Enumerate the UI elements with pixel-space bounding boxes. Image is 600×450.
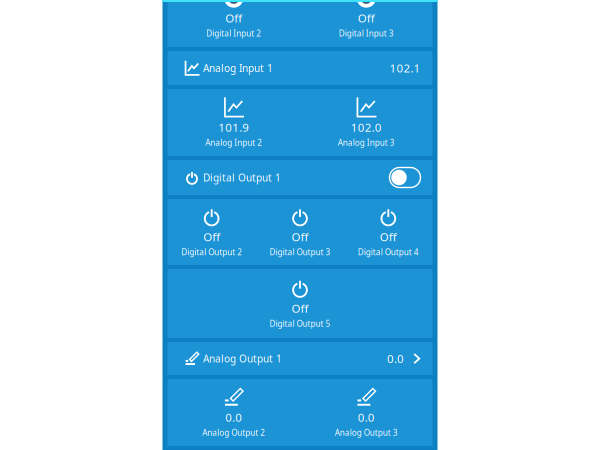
staticText: Analog Input 3	[338, 137, 395, 148]
staticText: Off	[358, 10, 375, 26]
button[interactable]: Off	[256, 206, 344, 258]
staticText: Off	[380, 229, 397, 244]
button[interactable]: Off	[167, 278, 432, 329]
button[interactable]: 102.0	[300, 97, 432, 148]
button[interactable]: 0.0	[300, 387, 432, 438]
button[interactable]: Off	[167, 206, 256, 258]
staticText: Digital Output 2	[181, 246, 242, 258]
button[interactable]: Off	[344, 206, 432, 258]
staticText: Off	[225, 10, 242, 26]
staticText: 102.0	[351, 119, 382, 135]
staticText: 0.0	[358, 409, 375, 425]
staticText: Digital Output 3	[269, 246, 330, 258]
staticText: Digital Input 2	[206, 28, 261, 39]
staticText: 0.0	[387, 351, 404, 366]
staticText: Analog Input 1	[203, 61, 273, 75]
staticText: Digital Input 3	[339, 28, 394, 39]
staticText: Analog Output 1	[203, 352, 282, 365]
staticText: Digital Output 5	[269, 318, 330, 329]
staticText: Digital Output 4	[358, 246, 419, 258]
staticText: Off	[291, 300, 308, 316]
staticText: 101.9	[218, 119, 249, 135]
button[interactable]: Analog Input 1	[167, 51, 432, 85]
button[interactable]: 0.0	[167, 387, 300, 438]
button[interactable]: 101.9	[167, 97, 300, 148]
staticText: Analog Output 3	[335, 427, 398, 438]
staticText: Digital Output 1	[203, 171, 281, 184]
staticText: Off	[291, 229, 308, 244]
staticText: 102.1	[389, 60, 420, 76]
staticText: 0.0	[225, 409, 242, 425]
staticText: Analog Input 2	[205, 137, 262, 148]
button[interactable]: Digital Output 1	[167, 160, 432, 195]
staticText: Off	[203, 229, 220, 244]
staticText: Analog Output 2	[202, 427, 265, 438]
button[interactable]: Analog Output 1	[167, 342, 432, 375]
